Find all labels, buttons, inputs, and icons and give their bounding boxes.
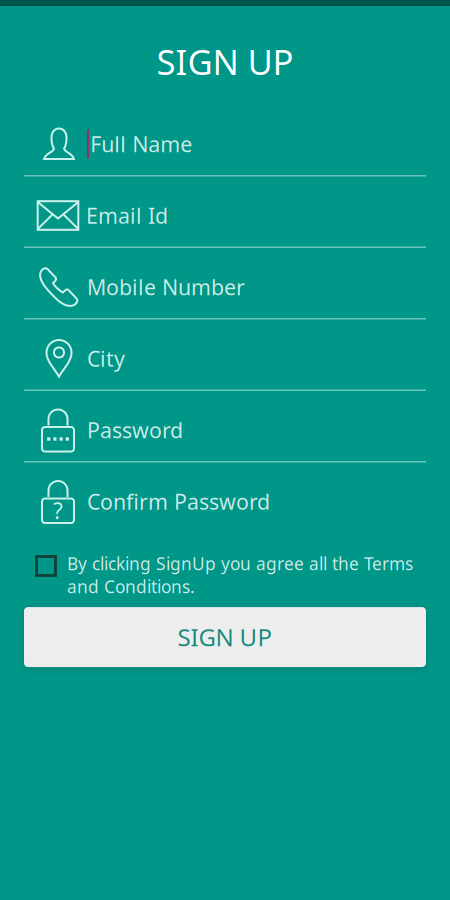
staticText: Full Name bbox=[90, 130, 192, 158]
button[interactable]: By clicking SignUp you agree all the Ter… bbox=[0, 552, 450, 598]
staticText: Mobile Number bbox=[87, 273, 245, 301]
button[interactable]: ? bbox=[24, 462, 426, 534]
staticText: Confirm Password bbox=[87, 487, 270, 516]
button[interactable]: SIGN UP bbox=[0, 607, 450, 667]
button[interactable]: Mobile Number bbox=[24, 248, 426, 319]
staticText: City bbox=[87, 344, 125, 373]
staticText: Email Id bbox=[86, 201, 168, 230]
staticText: SIGN UP bbox=[156, 38, 293, 84]
staticText: By clicking SignUp you agree all the Ter… bbox=[67, 552, 413, 598]
staticText: ? bbox=[53, 495, 63, 525]
staticText: Password bbox=[87, 416, 183, 444]
button[interactable]: Email Id bbox=[24, 176, 426, 248]
button[interactable]: Password bbox=[24, 391, 426, 462]
button[interactable]: City bbox=[24, 319, 426, 391]
button[interactable]: Full Name bbox=[24, 105, 426, 176]
staticText: SIGN UP bbox=[177, 621, 272, 653]
